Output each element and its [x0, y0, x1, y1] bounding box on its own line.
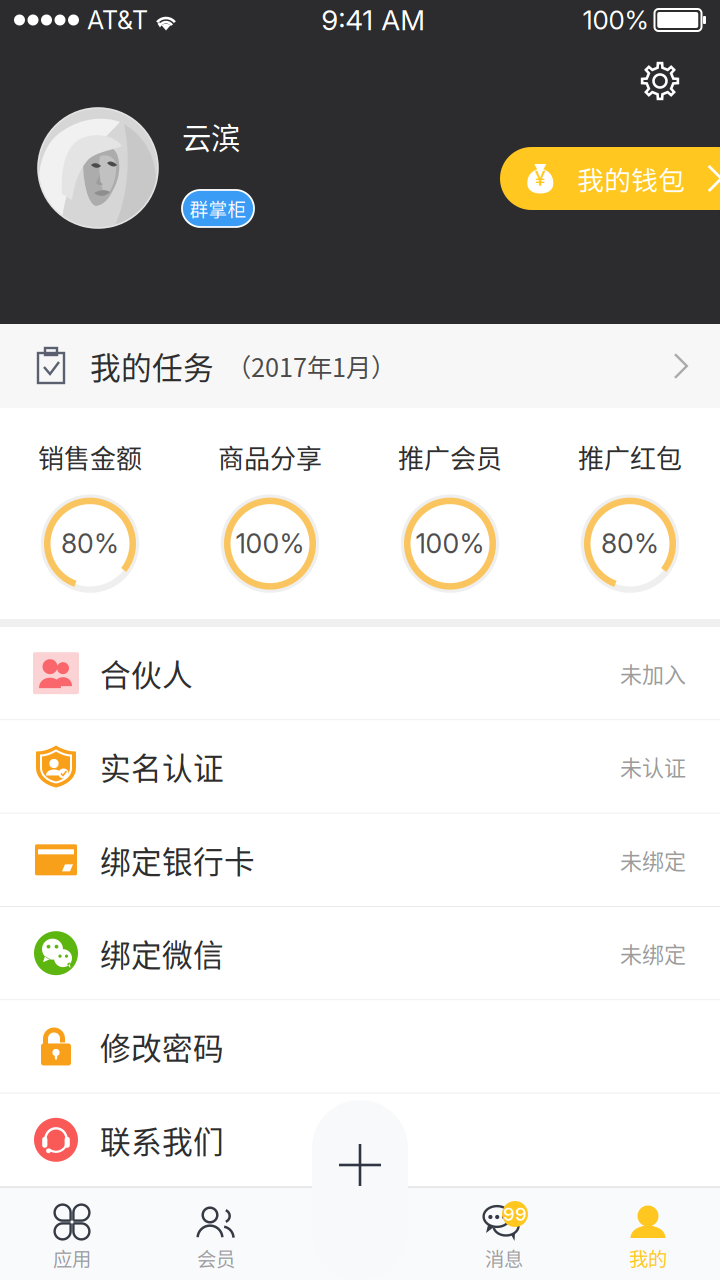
- button[interactable]: Settings: [637, 58, 683, 104]
- staticText: AT&T: [87, 5, 148, 35]
- staticText: 未绑定: [620, 844, 686, 876]
- button[interactable]: 我的任务: [0, 324, 720, 408]
- button[interactable]: 应用: [0, 1187, 144, 1280]
- staticText: 绑定微信: [100, 931, 224, 975]
- staticText: 9:41 AM: [321, 3, 425, 37]
- button[interactable]: 实名认证: [0, 720, 720, 814]
- staticText: 合伙人: [100, 651, 193, 695]
- staticText: 80%: [601, 527, 659, 560]
- staticText: 80%: [61, 527, 119, 560]
- staticText: 实名认证: [100, 744, 224, 789]
- staticText: 消息: [485, 1244, 523, 1272]
- staticText: 会员: [197, 1244, 235, 1272]
- staticText: 未绑定: [620, 937, 686, 969]
- staticText: 100%: [235, 527, 304, 560]
- staticText: 联系我们: [100, 1118, 224, 1162]
- staticText: （2017年1月）: [226, 348, 396, 384]
- button[interactable]: 修改密码: [0, 1000, 720, 1094]
- staticText: 99: [503, 1203, 527, 1225]
- button[interactable]: 绑定微信: [0, 907, 720, 1000]
- button[interactable]: 会员: [144, 1187, 288, 1280]
- staticText: 我的: [629, 1244, 667, 1272]
- staticText: 未认证: [620, 751, 686, 782]
- staticText: 商品分享: [218, 438, 322, 476]
- staticText: 我的任务: [90, 344, 214, 388]
- staticText: 推广红包: [578, 438, 682, 476]
- staticText: 修改密码: [100, 1024, 224, 1069]
- staticText: ¥: [535, 166, 546, 191]
- button[interactable]: 我的: [576, 1187, 720, 1280]
- button[interactable]: 联系我们: [0, 1094, 720, 1187]
- button[interactable]: ¥: [500, 147, 720, 210]
- staticText: 100%: [582, 4, 648, 36]
- button[interactable]: 99: [432, 1187, 576, 1280]
- staticText: 推广会员: [398, 438, 502, 476]
- staticText: 云滨: [182, 115, 240, 157]
- staticText: 未加入: [620, 657, 686, 689]
- staticText: 绑定银行卡: [100, 838, 255, 882]
- button[interactable]: Add: [312, 1100, 408, 1280]
- staticText: 100%: [415, 527, 484, 560]
- staticText: 销售金额: [38, 438, 142, 476]
- staticText: 群掌柜: [189, 195, 246, 222]
- staticText: 我的钱包: [577, 159, 685, 198]
- staticText: 应用: [53, 1244, 91, 1272]
- button[interactable]: 合伙人: [0, 627, 720, 720]
- button[interactable]: 绑定银行卡: [0, 814, 720, 907]
